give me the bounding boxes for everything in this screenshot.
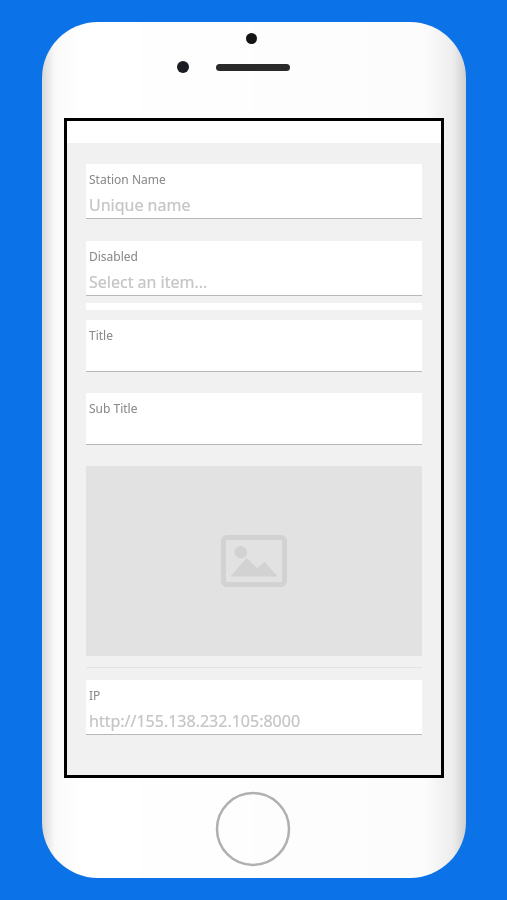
button[interactable]: Title — [86, 320, 422, 372]
button[interactable]: Sub Title — [86, 393, 422, 445]
staticText: Disabled — [89, 248, 138, 264]
button[interactable]: Home — [216, 792, 290, 866]
button[interactable]: Station Name — [86, 164, 422, 219]
staticText: Station Name — [89, 171, 166, 187]
staticText: Sub Title — [89, 400, 138, 416]
staticText: Select an item... — [89, 271, 208, 293]
staticText: IP — [89, 687, 101, 703]
staticText: Title — [89, 327, 113, 343]
button[interactable]: Disabled — [86, 241, 422, 296]
button[interactable]: IP — [86, 680, 422, 735]
staticText: http://155.138.232.105:8000 — [89, 710, 301, 732]
staticText: Unique name — [89, 194, 191, 216]
